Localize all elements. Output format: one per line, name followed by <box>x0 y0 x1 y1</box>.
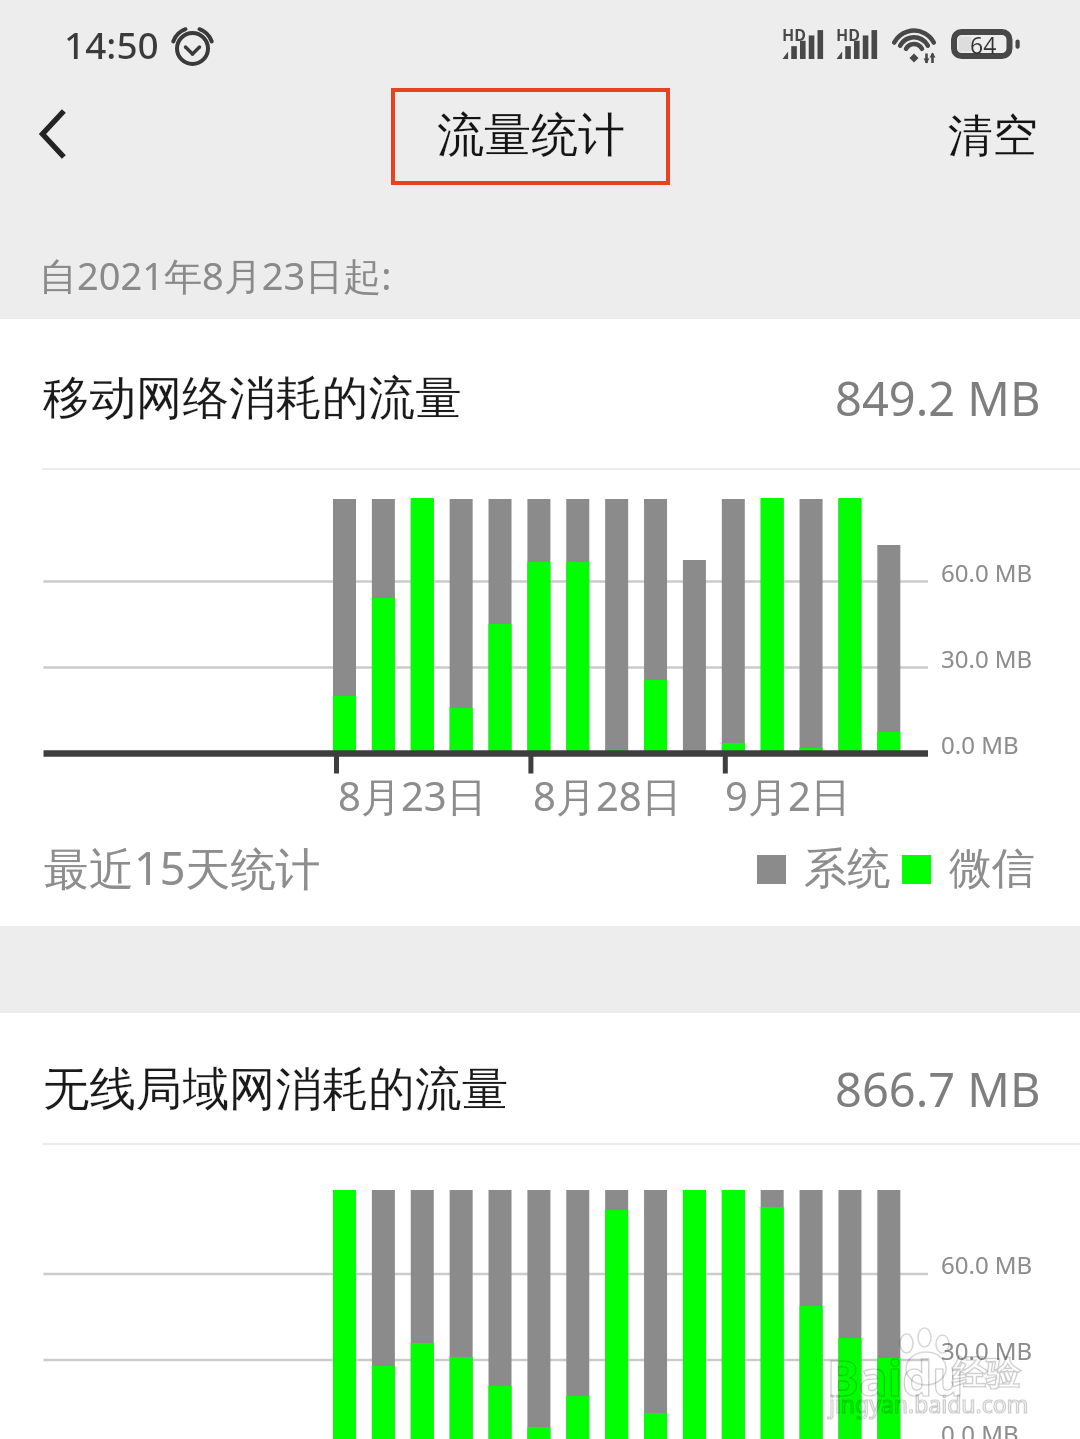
staticText: 30.0 MB <box>941 1334 1033 1367</box>
button[interactable]: 移动网络消耗的流量 <box>0 338 1080 458</box>
staticText: 14:50 <box>64 19 159 69</box>
staticText: 60.0 MB <box>941 1248 1033 1281</box>
button[interactable]: 清空 <box>908 90 1078 183</box>
staticText: 0.0 MB <box>941 728 1019 761</box>
staticText: 清空 <box>948 108 1038 165</box>
staticText: 0.0 MB <box>941 1417 1019 1439</box>
staticText: 9月2日 <box>725 768 851 823</box>
staticText: 移动网络消耗的流量 <box>43 369 462 428</box>
staticText: 64 <box>970 29 997 60</box>
staticText: HD <box>782 24 806 46</box>
staticText: 30.0 MB <box>941 642 1033 675</box>
staticText: HD <box>836 24 860 46</box>
staticText: 8月28日 <box>533 768 682 823</box>
button[interactable]: Back <box>0 86 110 186</box>
staticText: 最近15天统计 <box>44 837 321 898</box>
staticText: 经验 <box>952 1352 1020 1395</box>
staticText: 849.2 MB <box>835 366 1041 430</box>
button[interactable]: 无线局域网消耗的流量 <box>0 1029 1080 1149</box>
staticText: 无线局域网消耗的流量 <box>43 1060 508 1119</box>
staticText: 微信 <box>949 842 1035 896</box>
staticText: 866.7 MB <box>835 1057 1041 1121</box>
staticText: 8月23日 <box>338 768 487 823</box>
staticText: 自2021年8月23日起: <box>39 249 392 301</box>
staticText: 系统 <box>804 842 890 896</box>
staticText: 60.0 MB <box>941 556 1033 589</box>
staticText: 流量统计 <box>437 106 625 165</box>
staticText: Baidu <box>827 1345 964 1410</box>
button[interactable]: 流量统计 <box>391 88 670 185</box>
staticText: jingyan.baidu.com <box>829 1388 1029 1419</box>
